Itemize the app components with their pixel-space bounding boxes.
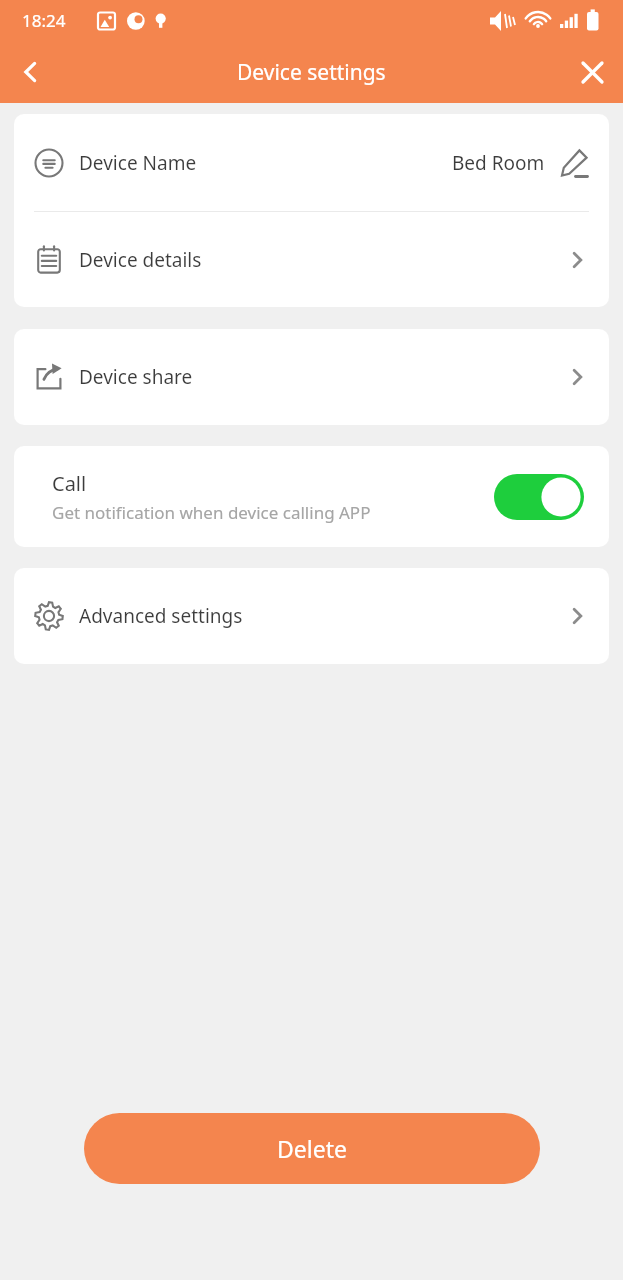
button[interactable]: Edit device name	[559, 148, 589, 178]
staticText: 18:24	[22, 9, 66, 32]
button[interactable]: Device Name	[14, 114, 609, 211]
staticText: Advanced settings	[79, 603, 243, 629]
button[interactable]: Delete	[84, 1113, 540, 1184]
staticText: Delete	[277, 1133, 347, 1164]
staticText: Device share	[79, 364, 193, 390]
button[interactable]: Back	[0, 41, 62, 103]
staticText: Device details	[79, 247, 202, 273]
button[interactable]: Device details	[14, 212, 609, 307]
staticText: Bed Room	[452, 150, 545, 176]
staticText: Device Name	[79, 150, 197, 176]
staticText: Call	[52, 470, 87, 497]
button[interactable]: Device share	[14, 329, 609, 425]
button[interactable]: Advanced settings	[14, 568, 609, 664]
button[interactable]: Call notification toggle	[494, 474, 584, 520]
staticText: Device settings	[237, 58, 386, 87]
staticText: Get notification when device calling APP	[52, 501, 371, 524]
button[interactable]: Call	[14, 446, 609, 547]
button[interactable]: Close	[561, 41, 623, 103]
